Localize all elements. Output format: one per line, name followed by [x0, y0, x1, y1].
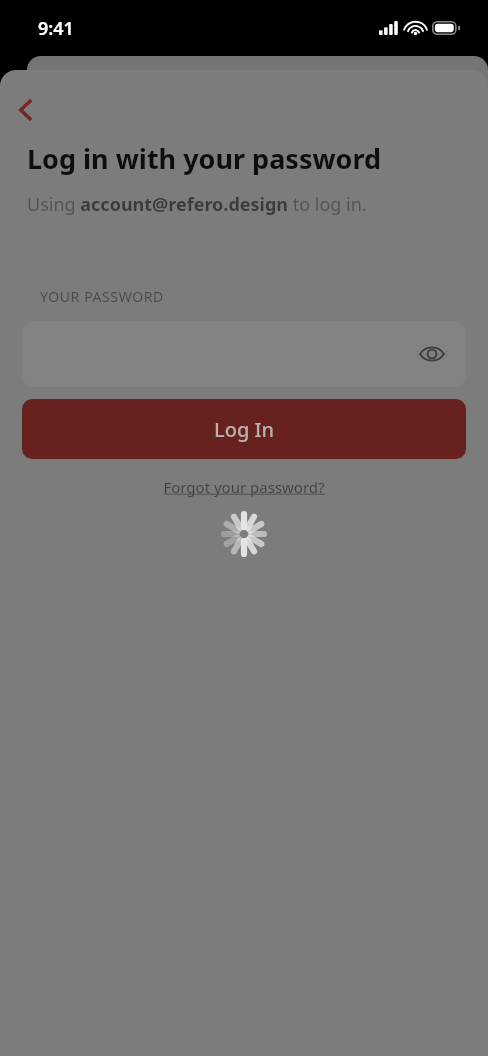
staticText: 9:41: [38, 16, 74, 41]
button[interactable]: Show password: [22, 321, 466, 387]
button[interactable]: Back: [4, 88, 48, 132]
staticText: Forgot your password?: [163, 477, 325, 497]
staticText: Log in with your password: [27, 140, 382, 177]
staticText: Using account@refero.design to log in.: [27, 192, 367, 217]
button[interactable]: Forgot your password?: [155, 475, 333, 499]
button[interactable]: Log In: [22, 399, 466, 459]
staticText: YOUR PASSWORD: [40, 287, 164, 306]
button[interactable]: Show password: [416, 338, 448, 370]
staticText: Log In: [214, 416, 275, 443]
